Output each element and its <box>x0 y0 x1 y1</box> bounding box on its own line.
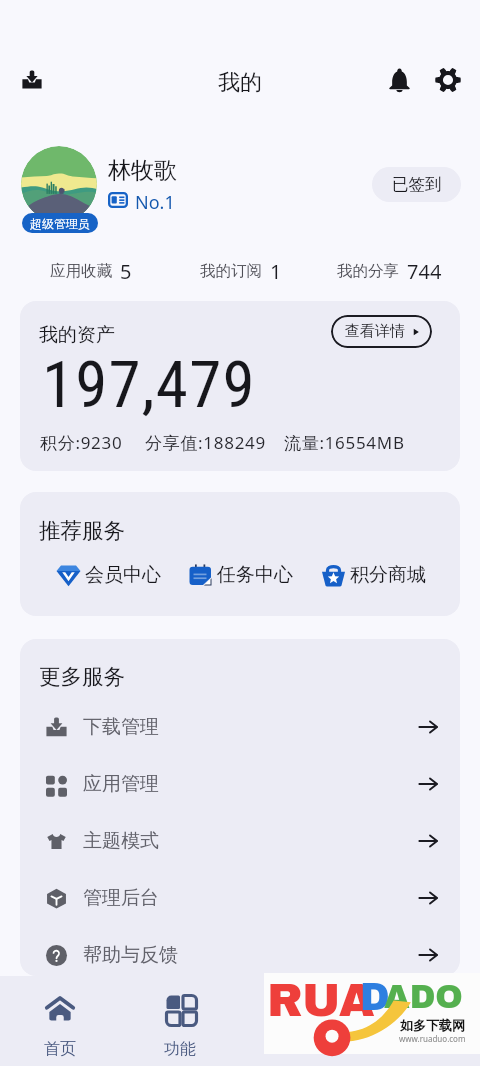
staticText: 应用管理 <box>83 772 159 796</box>
staticText: 主题模式 <box>83 829 159 853</box>
staticText: 林牧歌 <box>108 156 177 185</box>
button[interactable]: 管理后台 <box>20 869 460 926</box>
staticText: 5 <box>120 258 132 285</box>
staticText: RUA <box>267 976 375 1026</box>
button[interactable]: 我的订阅 <box>166 255 315 287</box>
staticText: 744 <box>407 258 442 285</box>
staticText: No.1 <box>135 190 175 210</box>
staticText: 更多服务 <box>39 663 125 690</box>
staticText: 积分:9230 <box>40 431 123 454</box>
staticText: 我的资产 <box>39 323 115 347</box>
button[interactable]: No.1 <box>108 190 175 210</box>
staticText: 已签到 <box>392 174 442 195</box>
staticText: ADO <box>384 979 463 1015</box>
button[interactable]: 会员中心 <box>42 558 174 592</box>
staticText: 管理后台 <box>83 886 159 910</box>
staticText: 我的订阅 <box>200 261 262 281</box>
staticText: 流量:16554MB <box>284 431 405 454</box>
staticText: 帮助与反馈 <box>83 943 178 967</box>
staticText: 任务中心 <box>217 563 293 587</box>
button[interactable]: 功能 <box>120 976 240 1066</box>
staticText: 推荐服务 <box>39 517 125 544</box>
button[interactable]: 查看详情 <box>331 315 432 348</box>
staticText: 1 <box>270 258 282 285</box>
staticText: 197,479 <box>42 347 256 423</box>
staticText: 首页 <box>44 1039 76 1059</box>
staticText: 超级管理员 <box>30 216 90 231</box>
button[interactable] <box>21 146 97 222</box>
staticText: 会员中心 <box>85 563 161 587</box>
button[interactable]: 积分商城 <box>307 558 440 592</box>
button[interactable]: Notifications <box>375 56 423 104</box>
staticText: 我的 <box>218 69 262 97</box>
staticText: 分享值:188249 <box>145 431 266 454</box>
button[interactable]: Settings <box>424 56 472 104</box>
button[interactable]: 应用管理 <box>20 755 460 812</box>
button[interactable]: Downloads <box>8 56 56 104</box>
staticText: 如多下载网 <box>400 1017 465 1033</box>
button[interactable]: 下载管理 <box>20 698 460 755</box>
staticText: 下载管理 <box>83 715 159 739</box>
button[interactable]: 已签到 <box>372 167 461 202</box>
staticText: www.ruaduo.com <box>399 1033 466 1044</box>
button[interactable]: 任务中心 <box>174 558 307 592</box>
button[interactable]: 我的分享 <box>315 255 464 287</box>
staticText: D <box>360 977 390 1018</box>
staticText: 应用收藏 <box>50 261 112 281</box>
button[interactable]: 帮助与反馈 <box>20 926 460 976</box>
staticText: 积分商城 <box>350 563 426 587</box>
staticText: 功能 <box>164 1039 196 1059</box>
button[interactable]: 主题模式 <box>20 812 460 869</box>
button[interactable]: 应用收藏 <box>16 255 166 287</box>
staticText: 查看详情 <box>345 322 405 341</box>
button[interactable]: 首页 <box>0 976 120 1066</box>
staticText: 我的分享 <box>337 261 399 281</box>
